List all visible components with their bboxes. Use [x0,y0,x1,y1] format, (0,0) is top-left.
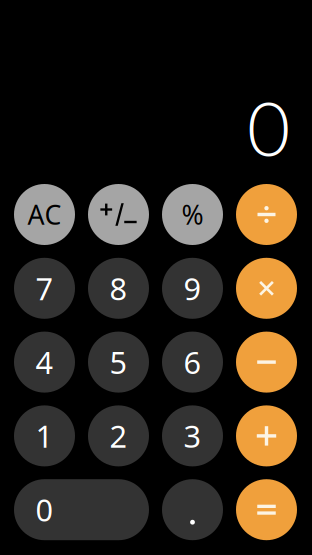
button[interactable]: 4 [14,332,75,393]
button[interactable]: 6 [162,332,223,393]
button[interactable]: Decimal point [162,479,223,540]
button[interactable]: Equals [236,479,297,540]
button[interactable]: Add [236,405,297,466]
button[interactable]: 5 [88,332,149,393]
button[interactable]: Multiply [236,258,297,319]
staticText: 6 [183,342,201,382]
button[interactable]: 9 [162,258,223,319]
staticText: % [181,197,203,232]
staticText: 7 [35,268,53,309]
staticText: 0 [35,489,53,530]
staticText: 0 [247,82,290,172]
button[interactable]: 0 [14,479,149,540]
staticText: 4 [35,342,53,382]
staticText: 3 [183,415,201,456]
staticText: 2 [109,415,127,456]
staticText: 5 [109,342,127,382]
button[interactable]: 2 [88,405,149,466]
button[interactable]: 3 [162,405,223,466]
staticText: 9 [183,268,201,309]
button[interactable]: Toggle sign [88,184,149,245]
button[interactable]: 1 [14,405,75,466]
button[interactable]: AC [14,184,75,245]
button[interactable]: % [162,184,223,245]
button[interactable]: 8 [88,258,149,319]
button[interactable]: 7 [14,258,75,319]
staticText: 1 [35,415,53,456]
staticText: AC [27,197,61,232]
button[interactable]: Divide [236,184,297,245]
button[interactable]: Subtract [236,332,297,393]
staticText: 8 [109,268,127,309]
